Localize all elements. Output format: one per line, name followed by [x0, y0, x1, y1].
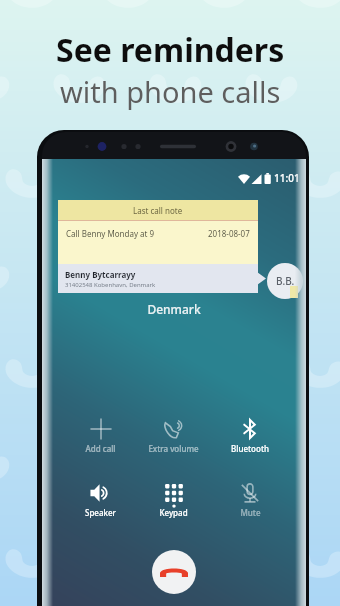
staticText: with phone calls — [60, 72, 281, 111]
button[interactable]: Mute — [219, 481, 281, 521]
staticText: 11:01 — [274, 171, 300, 185]
staticText: Bluetooth — [231, 443, 269, 454]
staticText: 2018-08-07 — [208, 228, 250, 239]
staticText: B.B. — [276, 274, 295, 288]
button[interactable]: Add call — [69, 417, 131, 457]
button[interactable]: Extra volume — [142, 417, 204, 457]
staticText: Keypad — [159, 507, 188, 518]
button[interactable]: Speaker — [69, 481, 131, 521]
staticText: Speaker — [85, 507, 116, 518]
button[interactable]: End call — [152, 550, 196, 594]
staticText: Benny Bytcarrayy — [65, 269, 136, 280]
staticText: Extra volume — [148, 443, 199, 454]
staticText: Denmark — [42, 301, 306, 317]
staticText: See reminders — [56, 28, 285, 72]
button[interactable]: Contact avatar — [267, 263, 303, 299]
staticText: Last call note — [133, 205, 183, 216]
staticText: Add call — [85, 443, 116, 454]
staticText: 31402548 Kobenhavn, Denmark — [65, 281, 156, 289]
staticText: Call Benny Monday at 9 — [66, 228, 155, 239]
button[interactable]: Keypad — [142, 481, 204, 521]
button[interactable]: Bluetooth — [219, 417, 281, 457]
staticText: Mute — [240, 507, 261, 518]
